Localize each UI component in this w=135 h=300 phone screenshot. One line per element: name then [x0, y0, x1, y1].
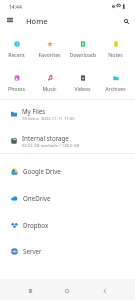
- staticText: Archives: [105, 85, 126, 92]
- button[interactable]: My Files: [0, 101, 135, 127]
- staticText: Downloads: [69, 51, 97, 58]
- button[interactable]: Back: [97, 283, 113, 299]
- staticText: Google Drive: [23, 167, 61, 175]
- button[interactable]: Archives: [99, 75, 132, 92]
- button[interactable]: Recent: [0, 41, 33, 58]
- button[interactable]: Downloads: [66, 41, 99, 58]
- button[interactable]: Menu: [3, 13, 17, 27]
- staticText: Server: [23, 247, 42, 255]
- staticText: My Files: [22, 107, 46, 115]
- button[interactable]: Photos: [0, 75, 33, 92]
- staticText: 70 items 2023-11-11 11:00: [22, 116, 75, 122]
- staticText: Favorites: [38, 51, 61, 58]
- staticText: Photos: [8, 85, 25, 92]
- staticText: 14:44: [9, 4, 22, 11]
- staticText: Home: [26, 16, 48, 26]
- button[interactable]: Dropbox: [0, 212, 135, 238]
- staticText: Internal storage: [22, 134, 69, 142]
- button[interactable]: Music: [33, 75, 66, 92]
- button[interactable]: Server: [0, 238, 135, 264]
- button[interactable]: Search: [119, 14, 133, 28]
- staticText: Notes: [108, 51, 123, 58]
- staticText: Videos: [74, 85, 91, 92]
- button[interactable]: Videos: [66, 75, 99, 92]
- button[interactable]: Google Drive: [0, 158, 135, 184]
- button[interactable]: Notes: [99, 41, 132, 58]
- button[interactable]: Recents: [22, 283, 38, 299]
- staticText: Dropbox: [23, 221, 49, 229]
- button[interactable]: Internal storage: [0, 128, 135, 154]
- staticText: Music: [42, 85, 57, 92]
- staticText: OneDrive: [23, 194, 51, 202]
- staticText: Recent: [8, 51, 25, 58]
- button[interactable]: Favorites: [33, 41, 66, 58]
- button[interactable]: Home: [59, 283, 75, 299]
- button[interactable]: OneDrive: [0, 185, 135, 211]
- staticText: 92.52 GB available / 128.0 GB: [22, 143, 80, 149]
